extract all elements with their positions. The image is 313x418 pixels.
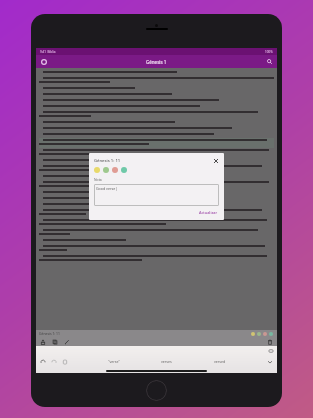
button[interactable] (39, 218, 274, 228)
button[interactable] (39, 120, 274, 126)
button[interactable]: "verse" (106, 358, 122, 365)
button[interactable] (39, 126, 274, 132)
button[interactable]: Redo (50, 358, 58, 366)
button[interactable] (39, 208, 274, 218)
button[interactable]: Copy (51, 338, 59, 346)
button[interactable]: Menu (39, 57, 48, 66)
button[interactable]: Highlight colour (269, 332, 273, 336)
button[interactable]: Hide keyboard (266, 358, 274, 366)
button[interactable] (39, 110, 274, 120)
button[interactable] (39, 228, 274, 238)
button[interactable]: Highlight colour (103, 167, 109, 173)
button[interactable]: versed (212, 358, 228, 365)
button[interactable]: Search (265, 57, 274, 66)
button[interactable] (39, 86, 274, 92)
button[interactable] (39, 92, 274, 98)
button[interactable] (39, 138, 274, 148)
staticText: "verse" (108, 359, 120, 364)
button[interactable] (39, 158, 274, 164)
button[interactable] (39, 202, 274, 208)
button[interactable]: Highlight colour (263, 332, 267, 336)
button[interactable] (39, 164, 274, 174)
button[interactable]: Keyboard settings (267, 347, 274, 354)
button[interactable] (39, 238, 274, 244)
button[interactable] (39, 180, 274, 190)
staticText: 9:41 Biblia (40, 50, 56, 54)
staticText: Good verse| (96, 186, 118, 191)
button[interactable] (39, 104, 274, 110)
button[interactable] (39, 70, 274, 76)
staticText: Génesis 1: 11 (39, 331, 61, 336)
staticText: 100% (265, 50, 273, 54)
button[interactable] (39, 190, 274, 196)
button[interactable]: Undo (39, 358, 47, 366)
button[interactable] (39, 196, 274, 202)
button[interactable]: Share (39, 338, 47, 346)
button[interactable]: Highlight colour (257, 332, 261, 336)
button[interactable] (39, 76, 274, 86)
button[interactable] (39, 148, 274, 158)
button[interactable]: Close (212, 157, 219, 164)
staticText: Génesis 1: 11 (94, 158, 121, 164)
button[interactable] (39, 244, 274, 254)
button[interactable]: verses (159, 358, 174, 365)
button[interactable]: Good verse| (94, 184, 219, 206)
button[interactable]: Clipboard (61, 358, 69, 366)
button[interactable]: Highlight colour (112, 167, 118, 173)
staticText: Actualizar (199, 210, 217, 215)
button[interactable] (39, 98, 274, 104)
button[interactable]: Edit note (63, 338, 71, 346)
button[interactable] (39, 132, 274, 138)
button[interactable]: Highlight colour (94, 167, 100, 173)
button[interactable] (39, 174, 274, 180)
button[interactable]: Actualizar (197, 209, 219, 216)
button[interactable]: Highlight colour (251, 332, 255, 336)
staticText: versed (214, 359, 226, 364)
button[interactable]: Highlight colour (121, 167, 127, 173)
button[interactable] (39, 254, 274, 264)
button[interactable]: Delete (266, 338, 274, 346)
staticText: Nota (94, 177, 102, 182)
staticText: verses (161, 359, 172, 364)
staticText: Génesis 1 (146, 59, 167, 65)
